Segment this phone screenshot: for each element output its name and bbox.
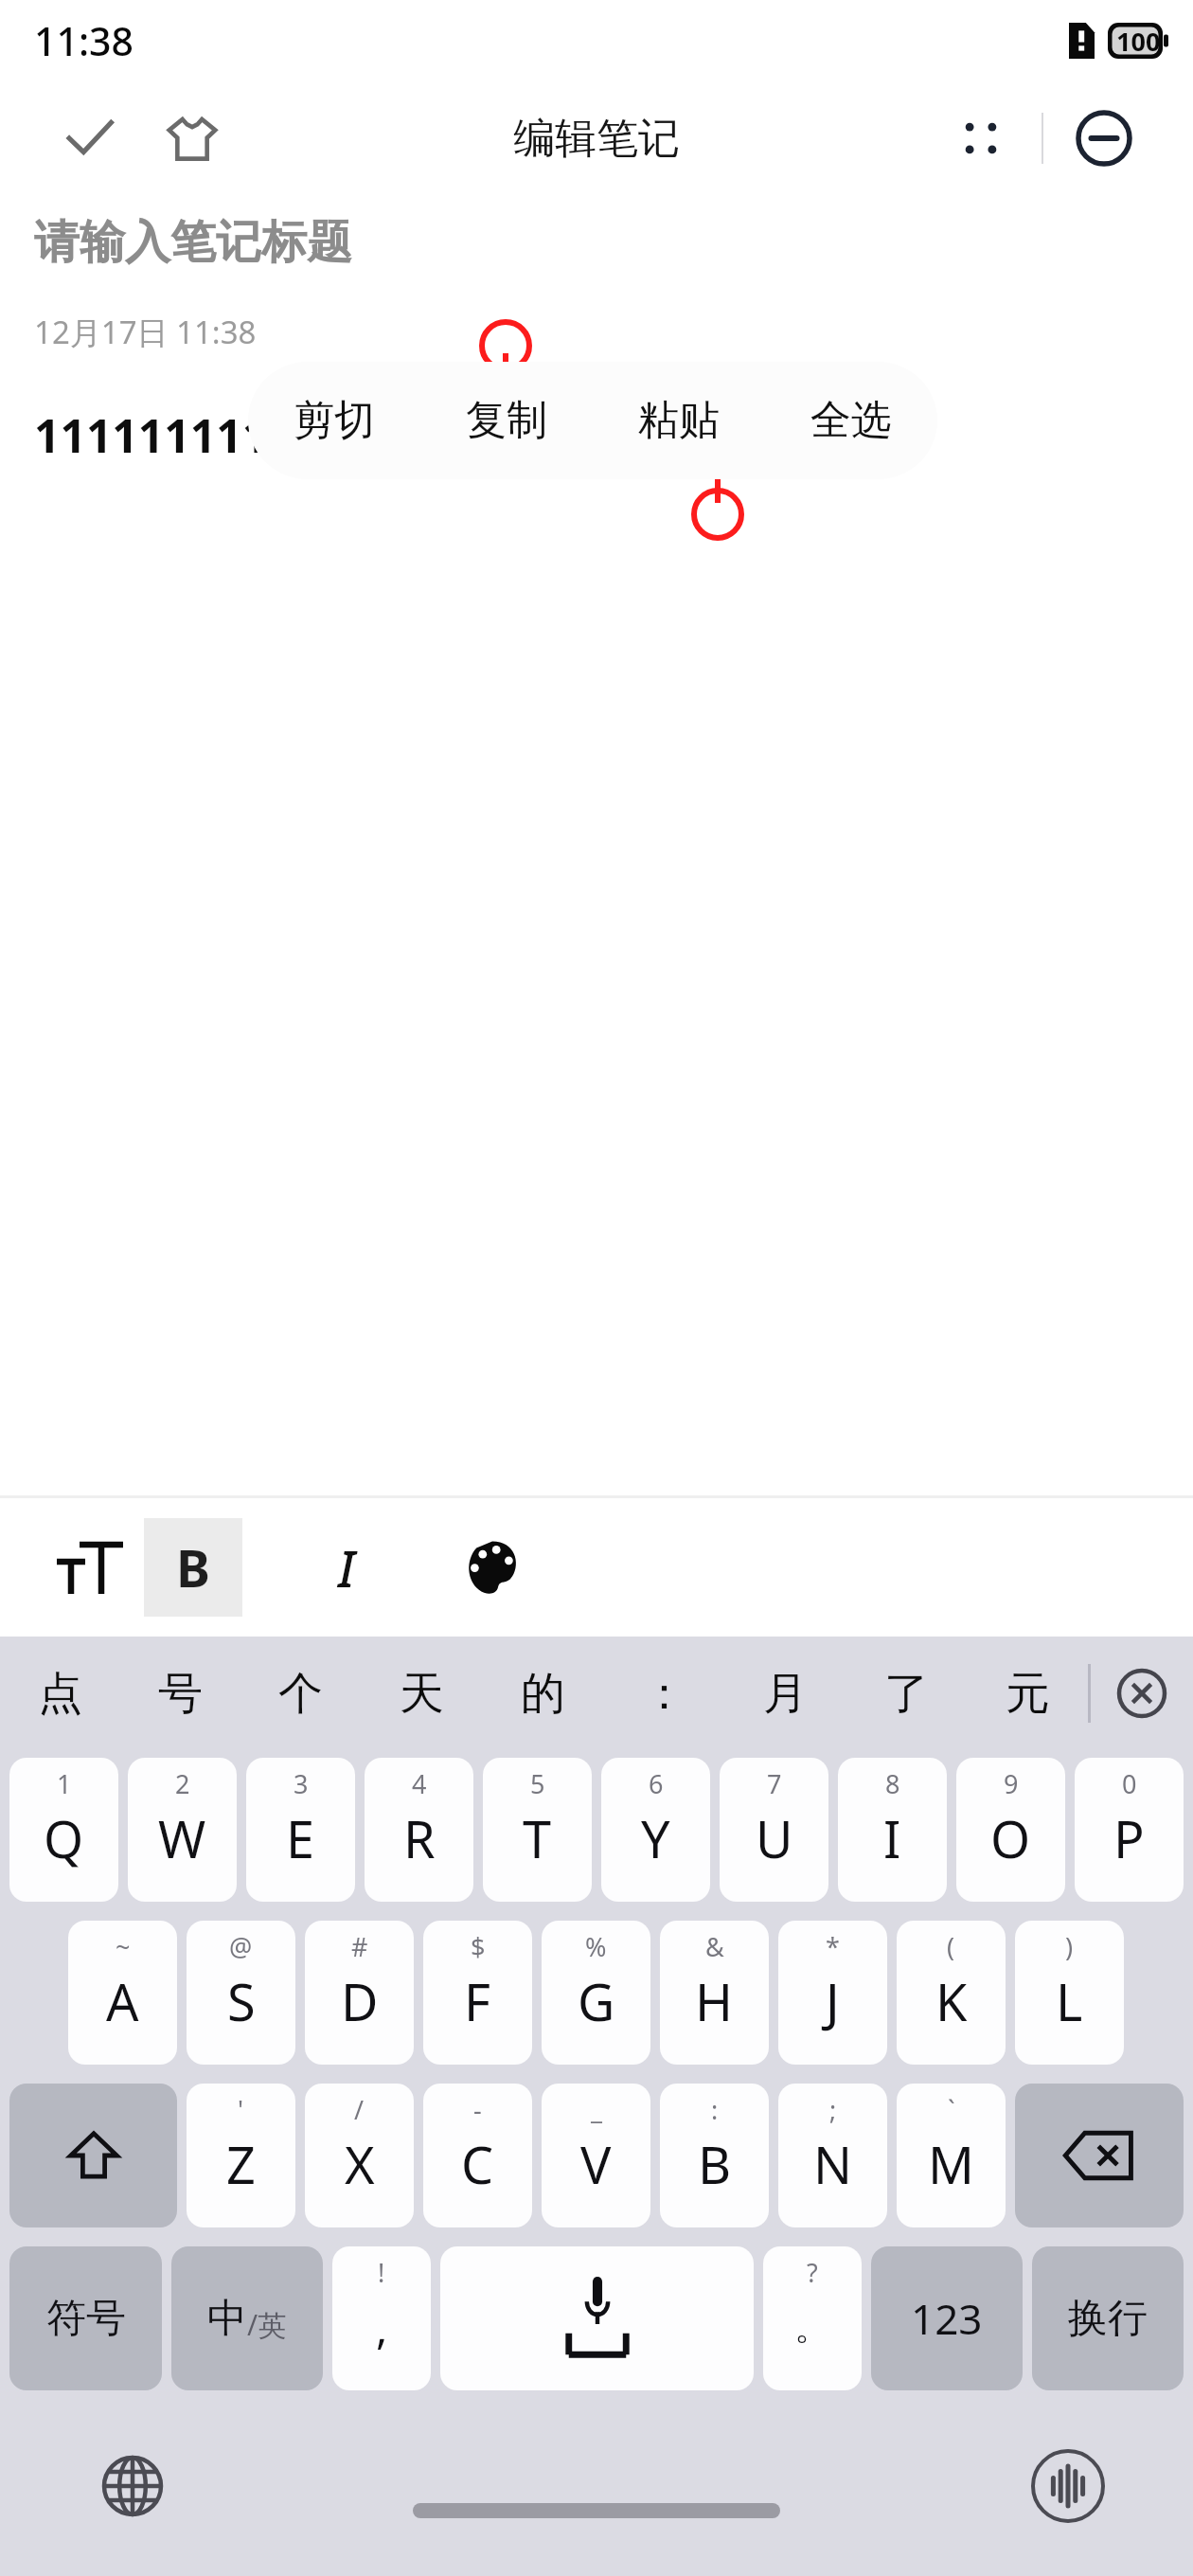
button[interactable]: 的 bbox=[482, 1637, 603, 1750]
button[interactable]: Clear candidates bbox=[1091, 1637, 1193, 1750]
staticText: # bbox=[351, 1929, 368, 1964]
staticText: @ bbox=[229, 1929, 253, 1964]
button[interactable]: 0 bbox=[1075, 1758, 1184, 1902]
button[interactable]: Font size bbox=[34, 1518, 133, 1617]
staticText: C bbox=[461, 2129, 494, 2199]
button[interactable]: ? bbox=[763, 2246, 862, 2390]
staticText: 555 bbox=[686, 404, 764, 466]
button[interactable]: Voice input bbox=[1023, 2441, 1113, 2531]
staticText: 7 bbox=[767, 1766, 782, 1801]
button[interactable]: 8 bbox=[838, 1758, 947, 1902]
staticText: G bbox=[578, 1966, 615, 2036]
staticText: 中 bbox=[207, 2294, 247, 2344]
button[interactable]: 4 bbox=[365, 1758, 473, 1902]
button[interactable]: ： bbox=[603, 1637, 724, 1750]
button[interactable]: Theme bbox=[151, 98, 233, 179]
staticText: / bbox=[354, 2092, 365, 2127]
button[interactable]: Split screen bbox=[920, 85, 1042, 191]
staticText: 100 bbox=[1116, 24, 1161, 59]
button[interactable]: ; bbox=[778, 2084, 887, 2227]
button[interactable]: Minimise bbox=[1043, 85, 1165, 191]
button[interactable]: 元 bbox=[967, 1637, 1088, 1750]
staticText: Y bbox=[641, 1803, 670, 1873]
button[interactable]: & bbox=[660, 1921, 769, 2065]
button[interactable]: 6 bbox=[601, 1758, 710, 1902]
button[interactable]: 月 bbox=[724, 1637, 846, 1750]
button[interactable]: - bbox=[423, 2084, 532, 2227]
staticText: 0 bbox=[1122, 1766, 1137, 1801]
staticText: 5 bbox=[530, 1766, 545, 1801]
staticText: - bbox=[473, 2092, 482, 2127]
staticText: 的 bbox=[521, 1666, 565, 1722]
button[interactable]: ` bbox=[897, 2084, 1006, 2227]
button[interactable]: Space bbox=[440, 2246, 754, 2390]
button[interactable]: 粘贴 bbox=[593, 362, 765, 479]
staticText: Q bbox=[44, 1803, 84, 1873]
button[interactable]: : bbox=[660, 2084, 769, 2227]
staticText: N bbox=[813, 2129, 853, 2199]
button[interactable]: 123 bbox=[871, 2246, 1023, 2390]
staticText: 5555555 bbox=[503, 404, 686, 466]
button[interactable]: 复制 bbox=[420, 362, 593, 479]
staticText: 1 bbox=[57, 1766, 72, 1801]
button[interactable]: 剪切 bbox=[248, 362, 420, 479]
button[interactable]: Text colour bbox=[443, 1518, 542, 1617]
button[interactable]: Backspace bbox=[1015, 2084, 1184, 2227]
button[interactable]: ( bbox=[897, 1921, 1006, 2065]
button[interactable]: @ bbox=[187, 1921, 295, 2065]
staticText: J bbox=[826, 1966, 840, 2036]
staticText: X bbox=[345, 2129, 375, 2199]
button[interactable]: ! bbox=[332, 2246, 431, 2390]
staticText: A bbox=[106, 1966, 139, 2036]
button[interactable]: 点 bbox=[0, 1637, 120, 1750]
staticText: * bbox=[826, 1929, 840, 1964]
button[interactable]: 全选 bbox=[765, 362, 937, 479]
button[interactable]: _ bbox=[542, 2084, 650, 2227]
staticText: 元 bbox=[1006, 1666, 1050, 1722]
staticText: B bbox=[698, 2129, 732, 2199]
staticText: U bbox=[756, 1803, 793, 1873]
staticText: 月 bbox=[763, 1666, 808, 1722]
button[interactable]: 个 bbox=[240, 1637, 361, 1750]
button[interactable]: # bbox=[305, 1921, 414, 2065]
button[interactable]: 5 bbox=[483, 1758, 592, 1902]
button[interactable]: Change language bbox=[87, 2441, 178, 2531]
button[interactable]: Shift bbox=[9, 2084, 177, 2227]
button[interactable]: 3 bbox=[246, 1758, 355, 1902]
staticText: 个 bbox=[278, 1666, 323, 1722]
staticText: 111111111155555555 bbox=[34, 404, 503, 466]
button[interactable]: 了 bbox=[846, 1637, 967, 1750]
button[interactable]: 符号 bbox=[9, 2246, 162, 2390]
staticText: R bbox=[403, 1803, 436, 1873]
button[interactable]: 中 bbox=[171, 2246, 323, 2390]
staticText: I bbox=[883, 1803, 901, 1873]
staticText: % bbox=[585, 1929, 607, 1964]
staticText: 11:38 bbox=[34, 14, 134, 67]
button[interactable]: 号 bbox=[120, 1637, 240, 1750]
button[interactable]: ) bbox=[1015, 1921, 1124, 2065]
staticText: ： bbox=[642, 1666, 686, 1722]
button[interactable]: 2 bbox=[128, 1758, 237, 1902]
button[interactable]: 7 bbox=[720, 1758, 828, 1902]
staticText: 123 bbox=[911, 2290, 983, 2347]
button[interactable]: Done bbox=[49, 98, 131, 179]
staticText: 4 bbox=[412, 1766, 427, 1801]
staticText: ( bbox=[947, 1929, 955, 1964]
staticText: I bbox=[338, 1534, 355, 1601]
button[interactable]: 1 bbox=[9, 1758, 118, 1902]
button[interactable]: 换行 bbox=[1032, 2246, 1184, 2390]
button[interactable]: $ bbox=[423, 1921, 532, 2065]
button[interactable]: 9 bbox=[956, 1758, 1065, 1902]
button[interactable]: I bbox=[297, 1518, 396, 1617]
button[interactable]: 天 bbox=[361, 1637, 482, 1750]
button[interactable]: % bbox=[542, 1921, 650, 2065]
button[interactable]: ~ bbox=[68, 1921, 177, 2065]
staticText: E bbox=[286, 1803, 315, 1873]
button[interactable]: ' bbox=[187, 2084, 295, 2227]
staticText: 了 bbox=[884, 1666, 929, 1722]
staticText: K bbox=[935, 1966, 968, 2036]
staticText: 符号 bbox=[46, 2294, 126, 2344]
button[interactable]: / bbox=[305, 2084, 414, 2227]
button[interactable]: * bbox=[778, 1921, 887, 2065]
button[interactable]: B bbox=[144, 1518, 242, 1617]
